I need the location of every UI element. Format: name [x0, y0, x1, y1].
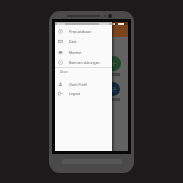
staticText: Bantuan dukungan [69, 60, 100, 65]
button[interactable]: Bantuan dukungan [55, 57, 112, 67]
staticText: Logout [69, 91, 81, 96]
button[interactable]: Monitor [55, 47, 112, 57]
staticText: Perpustakaan [69, 29, 92, 34]
button[interactable]: Ubah Profil [55, 79, 112, 89]
button[interactable]: Impor data [106, 82, 120, 96]
staticText: Ubah Profil [69, 82, 87, 87]
button[interactable]: Logout [55, 88, 112, 98]
button[interactable]: Perpustakaan [55, 26, 112, 36]
button[interactable]: Tambah data [106, 56, 121, 71]
staticText: Monitor [69, 50, 82, 55]
staticText: Data [69, 39, 77, 44]
button[interactable]: Data [55, 36, 112, 46]
staticText: Akun [60, 70, 68, 74]
